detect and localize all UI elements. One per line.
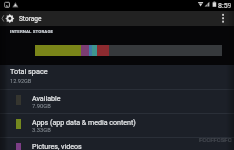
staticText: Pictures, videos: [32, 142, 82, 150]
staticText: 12.92GB: [10, 78, 32, 85]
button[interactable]: Available: [0, 90, 234, 113]
staticText: Apps (app data & media content): [32, 118, 136, 126]
button[interactable]: Pictures, videos: [0, 138, 234, 150]
staticText: 8:59: [218, 2, 232, 10]
staticText: FCCFFCSFC: [199, 136, 232, 143]
staticText: Total space: [10, 67, 48, 76]
button[interactable]: More options: [220, 11, 234, 26]
button[interactable]: Apps (app data & media content): [0, 114, 234, 137]
staticText: INTERNAL STORAGE: [10, 29, 54, 34]
staticText: Storage: [19, 15, 42, 23]
button[interactable]: Storage: [0, 11, 234, 26]
staticText: Available: [32, 94, 61, 102]
staticText: 7.90GB: [32, 103, 51, 110]
button[interactable]: Total space: [0, 65, 234, 89]
staticText: 3.33GB: [32, 127, 51, 134]
